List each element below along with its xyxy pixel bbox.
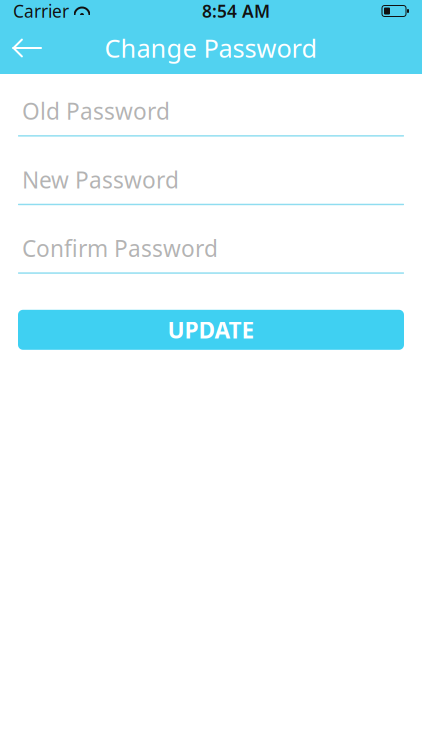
button[interactable]: Back	[0, 22, 54, 74]
staticText: UPDATE	[167, 315, 254, 345]
staticText: Old Password	[22, 96, 170, 126]
staticText: Carrier	[13, 0, 69, 22]
staticText: Confirm Password	[22, 233, 218, 263]
button[interactable]: UPDATE	[18, 310, 404, 350]
staticText: 8:54 AM	[202, 0, 270, 22]
staticText: New Password	[22, 165, 179, 195]
staticText: Change Password	[104, 31, 317, 65]
